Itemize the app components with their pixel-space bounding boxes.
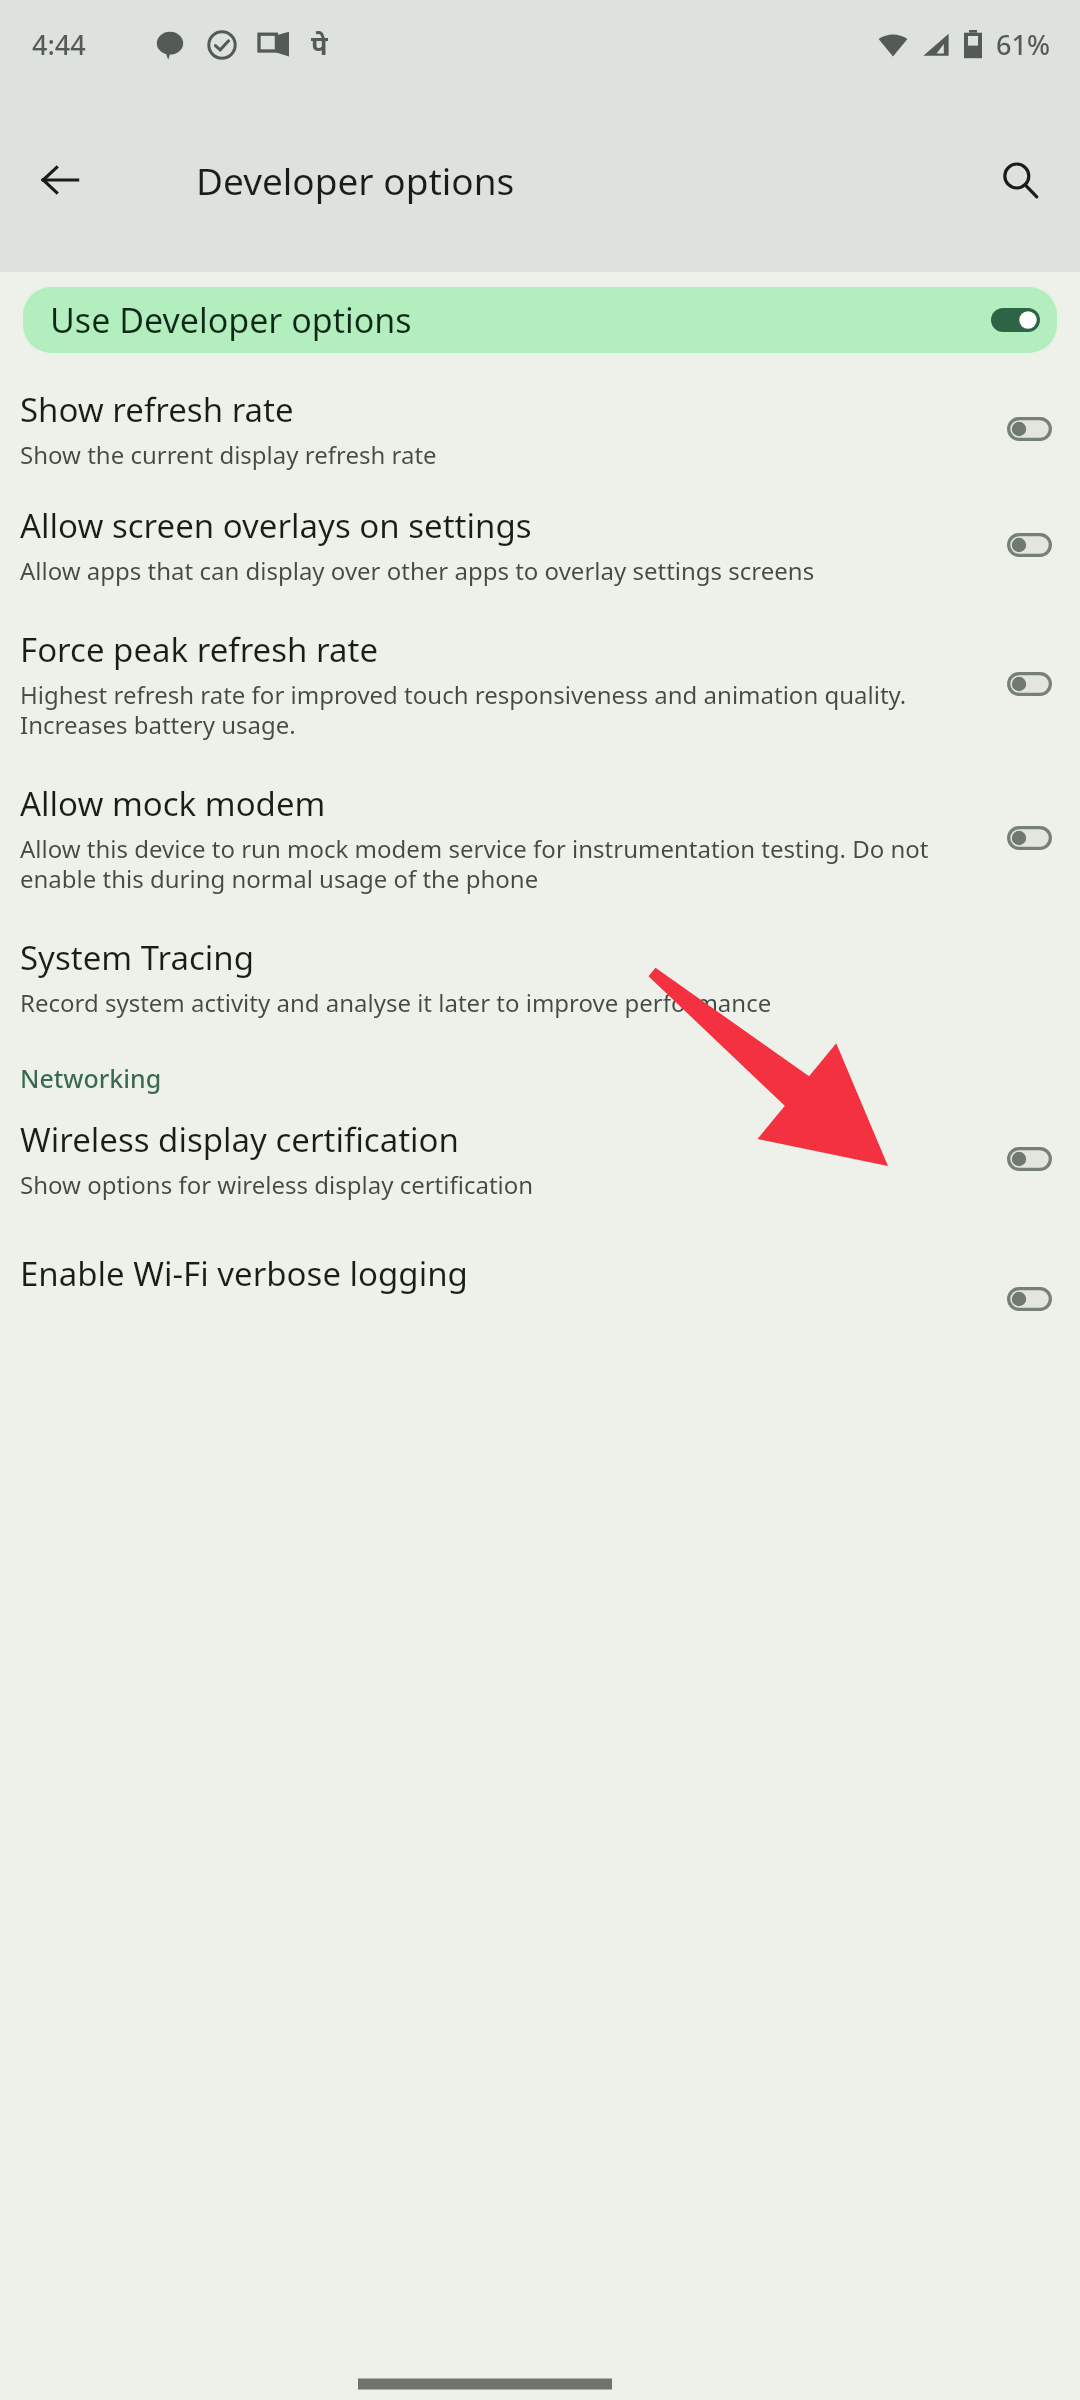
button[interactable]: Allow screen overlays on settings — [0, 481, 1080, 597]
button[interactable]: Enable Wi-Fi verbose logging — [0, 1251, 1080, 1296]
staticText: Show the current display refresh rate — [20, 438, 437, 471]
button[interactable]: Wireless display certification — [0, 1117, 1080, 1211]
button[interactable]: Force peak refresh rate — [1001, 666, 1058, 702]
button[interactable]: Enable Wi-Fi verbose logging — [1001, 1281, 1058, 1317]
button[interactable]: Wireless display certification — [1001, 1141, 1058, 1177]
staticText: Allow mock modem — [20, 781, 326, 826]
staticText: Allow apps that can display over other a… — [20, 554, 815, 587]
staticText: Allow this device to run mock modem serv… — [20, 832, 987, 895]
button[interactable]: Back — [18, 138, 102, 222]
staticText: Networking — [20, 1061, 162, 1095]
staticText: 4:44 — [32, 26, 86, 63]
staticText: Developer options — [196, 155, 515, 205]
staticText: Force peak refresh rate — [20, 627, 379, 672]
staticText: System Tracing — [20, 935, 254, 980]
button[interactable]: Force peak refresh rate — [0, 597, 1080, 751]
button[interactable]: Allow mock modem — [0, 751, 1080, 905]
button[interactable]: Use Developer options — [23, 287, 1057, 353]
button[interactable]: Allow mock modem — [1001, 820, 1058, 856]
staticText: Show options for wireless display certif… — [20, 1168, 534, 1201]
button[interactable]: System Tracing — [0, 905, 1080, 1029]
button[interactable]: Show refresh rate — [1001, 411, 1058, 447]
button[interactable]: Allow screen overlays on settings — [1001, 527, 1058, 563]
staticText: 61% — [996, 26, 1050, 63]
staticText: Show refresh rate — [20, 387, 294, 432]
staticText: Enable Wi-Fi verbose logging — [20, 1251, 1001, 1296]
staticText: Highest refresh rate for improved touch … — [20, 678, 987, 741]
staticText: Record system activity and analyse it la… — [20, 986, 772, 1019]
staticText: पे — [311, 26, 328, 63]
staticText: Allow screen overlays on settings — [20, 503, 532, 548]
staticText: Use Developer options — [50, 297, 412, 343]
button[interactable]: Show refresh rate — [0, 377, 1080, 481]
staticText: Wireless display certification — [20, 1117, 459, 1162]
button[interactable]: Search — [978, 138, 1062, 222]
